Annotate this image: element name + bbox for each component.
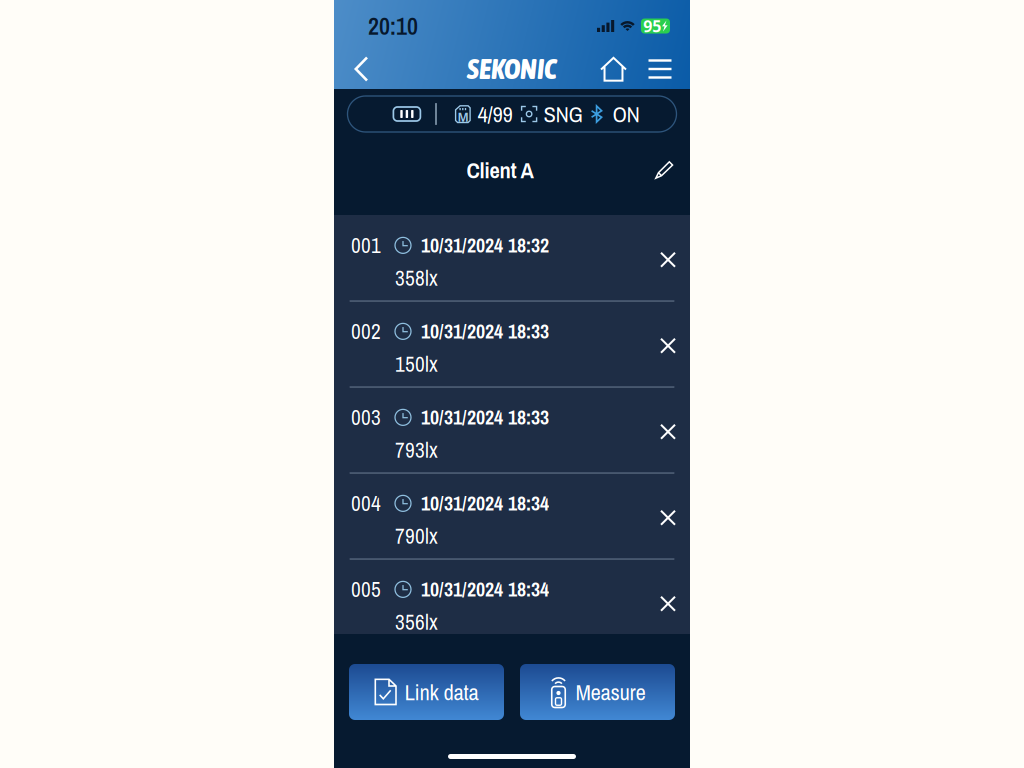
staticText: 10/31/2024 18:33 [421, 318, 549, 345]
staticText: 358lx [395, 264, 438, 292]
staticText: 10/31/2024 18:34 [421, 490, 549, 517]
staticText: 005 [351, 575, 381, 604]
staticText: M [458, 109, 469, 125]
button[interactable]: Measure [520, 664, 675, 720]
staticText: SEKONIC [467, 53, 557, 85]
button[interactable]: Delete 004 [647, 497, 689, 539]
staticText: 790lx [395, 522, 438, 550]
button[interactable]: Link data [349, 664, 504, 720]
staticText: 793lx [395, 436, 438, 464]
button[interactable]: Menu [638, 47, 682, 91]
staticText: Measure [575, 677, 645, 707]
staticText: 10/31/2024 18:33 [421, 404, 549, 431]
staticText: 150lx [395, 350, 438, 378]
staticText: SNG [544, 99, 583, 129]
staticText: 004 [351, 489, 381, 518]
staticText: 10/31/2024 18:34 [421, 576, 549, 603]
staticText: 10/31/2024 18:32 [421, 232, 549, 259]
button[interactable]: Home [589, 47, 638, 91]
button[interactable]: Back [339, 47, 383, 91]
button[interactable]: Delete 003 [647, 411, 689, 453]
staticText: 002 [351, 317, 381, 346]
staticText: 4/99 [478, 99, 513, 129]
button[interactable]: Delete 002 [647, 325, 689, 367]
button[interactable]: Delete 005 [647, 583, 689, 625]
button[interactable]: Delete 001 [647, 239, 689, 281]
staticText: 356lx [395, 608, 438, 636]
staticText: ON [613, 99, 640, 129]
staticText: 001 [351, 231, 381, 260]
staticText: Client A [466, 155, 533, 185]
staticText: 20:10 [368, 10, 418, 42]
button[interactable]: Edit client name [644, 150, 684, 190]
staticText: Link data [404, 677, 478, 707]
staticText: 95 [643, 15, 661, 37]
staticText: 003 [351, 403, 381, 432]
